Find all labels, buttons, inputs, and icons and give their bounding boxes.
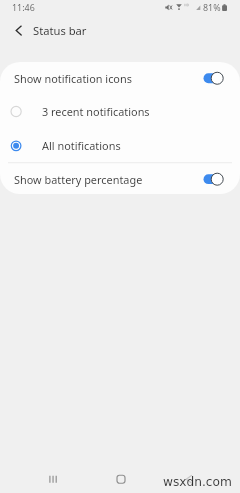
staticText: Status bar xyxy=(33,23,87,38)
staticText: Show notification icons xyxy=(14,71,132,86)
staticText: 3 recent notifications xyxy=(42,104,150,119)
button[interactable]: Back xyxy=(173,464,204,493)
button[interactable]: Home xyxy=(105,464,136,493)
button[interactable]: All notifications xyxy=(0,128,240,162)
staticText: wsxdn.com xyxy=(163,475,232,489)
button[interactable]: Recent apps xyxy=(38,464,69,493)
button[interactable]: Show battery percentage xyxy=(0,163,240,194)
staticText: All notifications xyxy=(42,138,121,153)
staticText: 81% xyxy=(203,1,221,13)
staticText: Show battery percentage xyxy=(14,172,143,187)
button[interactable]: Show notification icons xyxy=(0,62,240,95)
button[interactable]: Navigate up xyxy=(6,20,30,44)
staticText: 11:46 xyxy=(12,1,35,13)
button[interactable]: 3 recent notifications xyxy=(0,95,240,128)
